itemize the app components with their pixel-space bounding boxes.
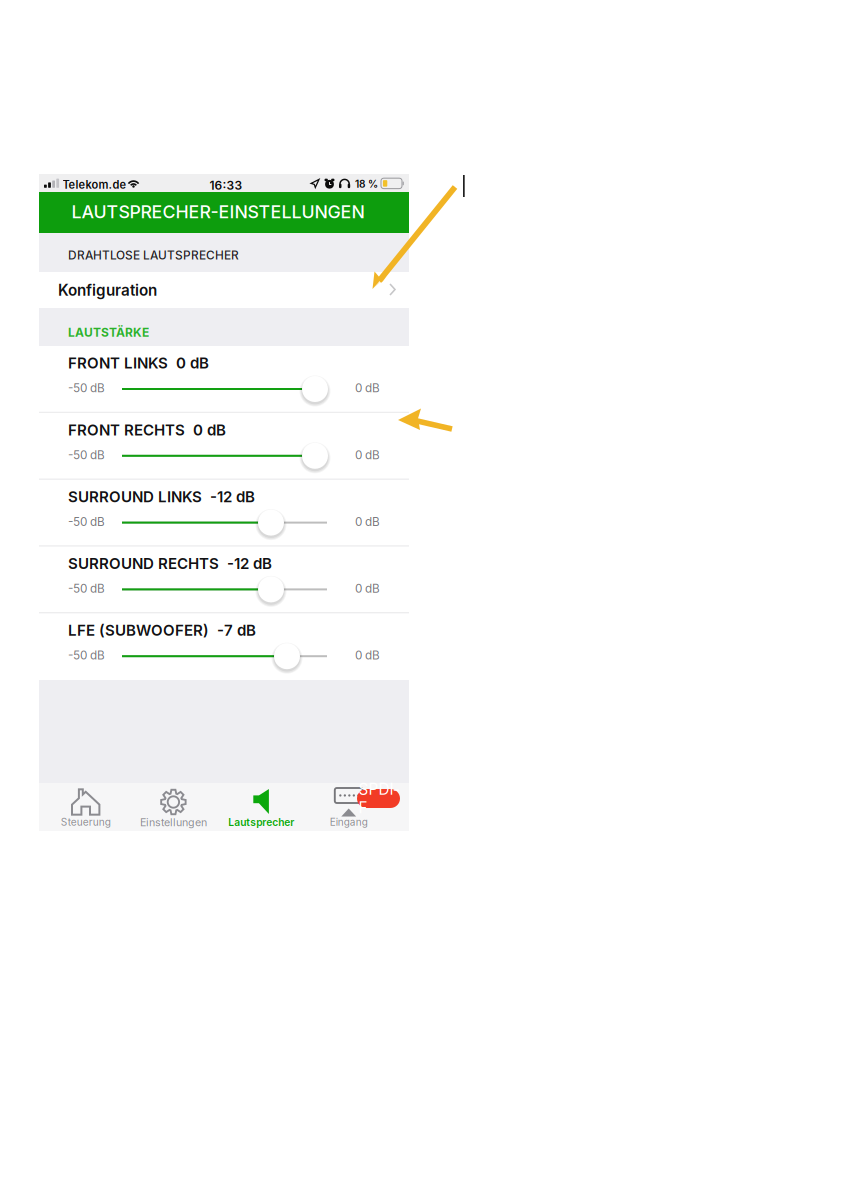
staticText: LAUTSTÄRKE [68, 325, 149, 339]
staticText: 0 dB [355, 515, 380, 529]
staticText: Konfiguration [58, 281, 157, 299]
staticText: Eingang [330, 816, 368, 828]
staticText: 0 dB [355, 648, 380, 662]
staticText: 16:33 [209, 178, 242, 192]
staticText: 18 % [355, 178, 378, 190]
staticText: Einstellungen [140, 816, 207, 829]
staticText: SURROUND LINKS -12 dB [68, 488, 255, 506]
staticText: LFE (SUBWOOFER) -7 dB [68, 621, 256, 639]
button[interactable]: Steuerung [39, 174, 409, 831]
staticText: 0 dB [355, 581, 380, 596]
staticText: 0 dB [355, 448, 380, 462]
staticText: 0 dB [355, 381, 380, 395]
staticText: Telekom.de [62, 178, 126, 191]
staticText: -50 dB [68, 381, 105, 395]
staticText: FRONT RECHTS 0 dB [68, 421, 226, 439]
staticText: -50 dB [68, 448, 105, 462]
button[interactable]: Konfiguration [39, 174, 409, 831]
staticText: -50 dB [68, 648, 105, 662]
button[interactable]: Eingang [39, 174, 409, 831]
staticText: LAUTSPRECHER-EINSTELLUNGEN [71, 201, 364, 222]
staticText: Lautsprecher [228, 816, 294, 828]
staticText: SPDIF [358, 780, 398, 817]
button[interactable]: Einstellungen [39, 174, 409, 831]
staticText: -50 dB [68, 581, 105, 596]
staticText: Steuerung [61, 816, 111, 828]
staticText: FRONT LINKS 0 dB [68, 354, 209, 372]
staticText: SURROUND RECHTS -12 dB [68, 554, 272, 573]
staticText: -50 dB [68, 515, 105, 529]
button[interactable]: Lautsprecher [39, 174, 409, 831]
staticText: DRAHTLOSE LAUTSPRECHER [68, 248, 239, 262]
